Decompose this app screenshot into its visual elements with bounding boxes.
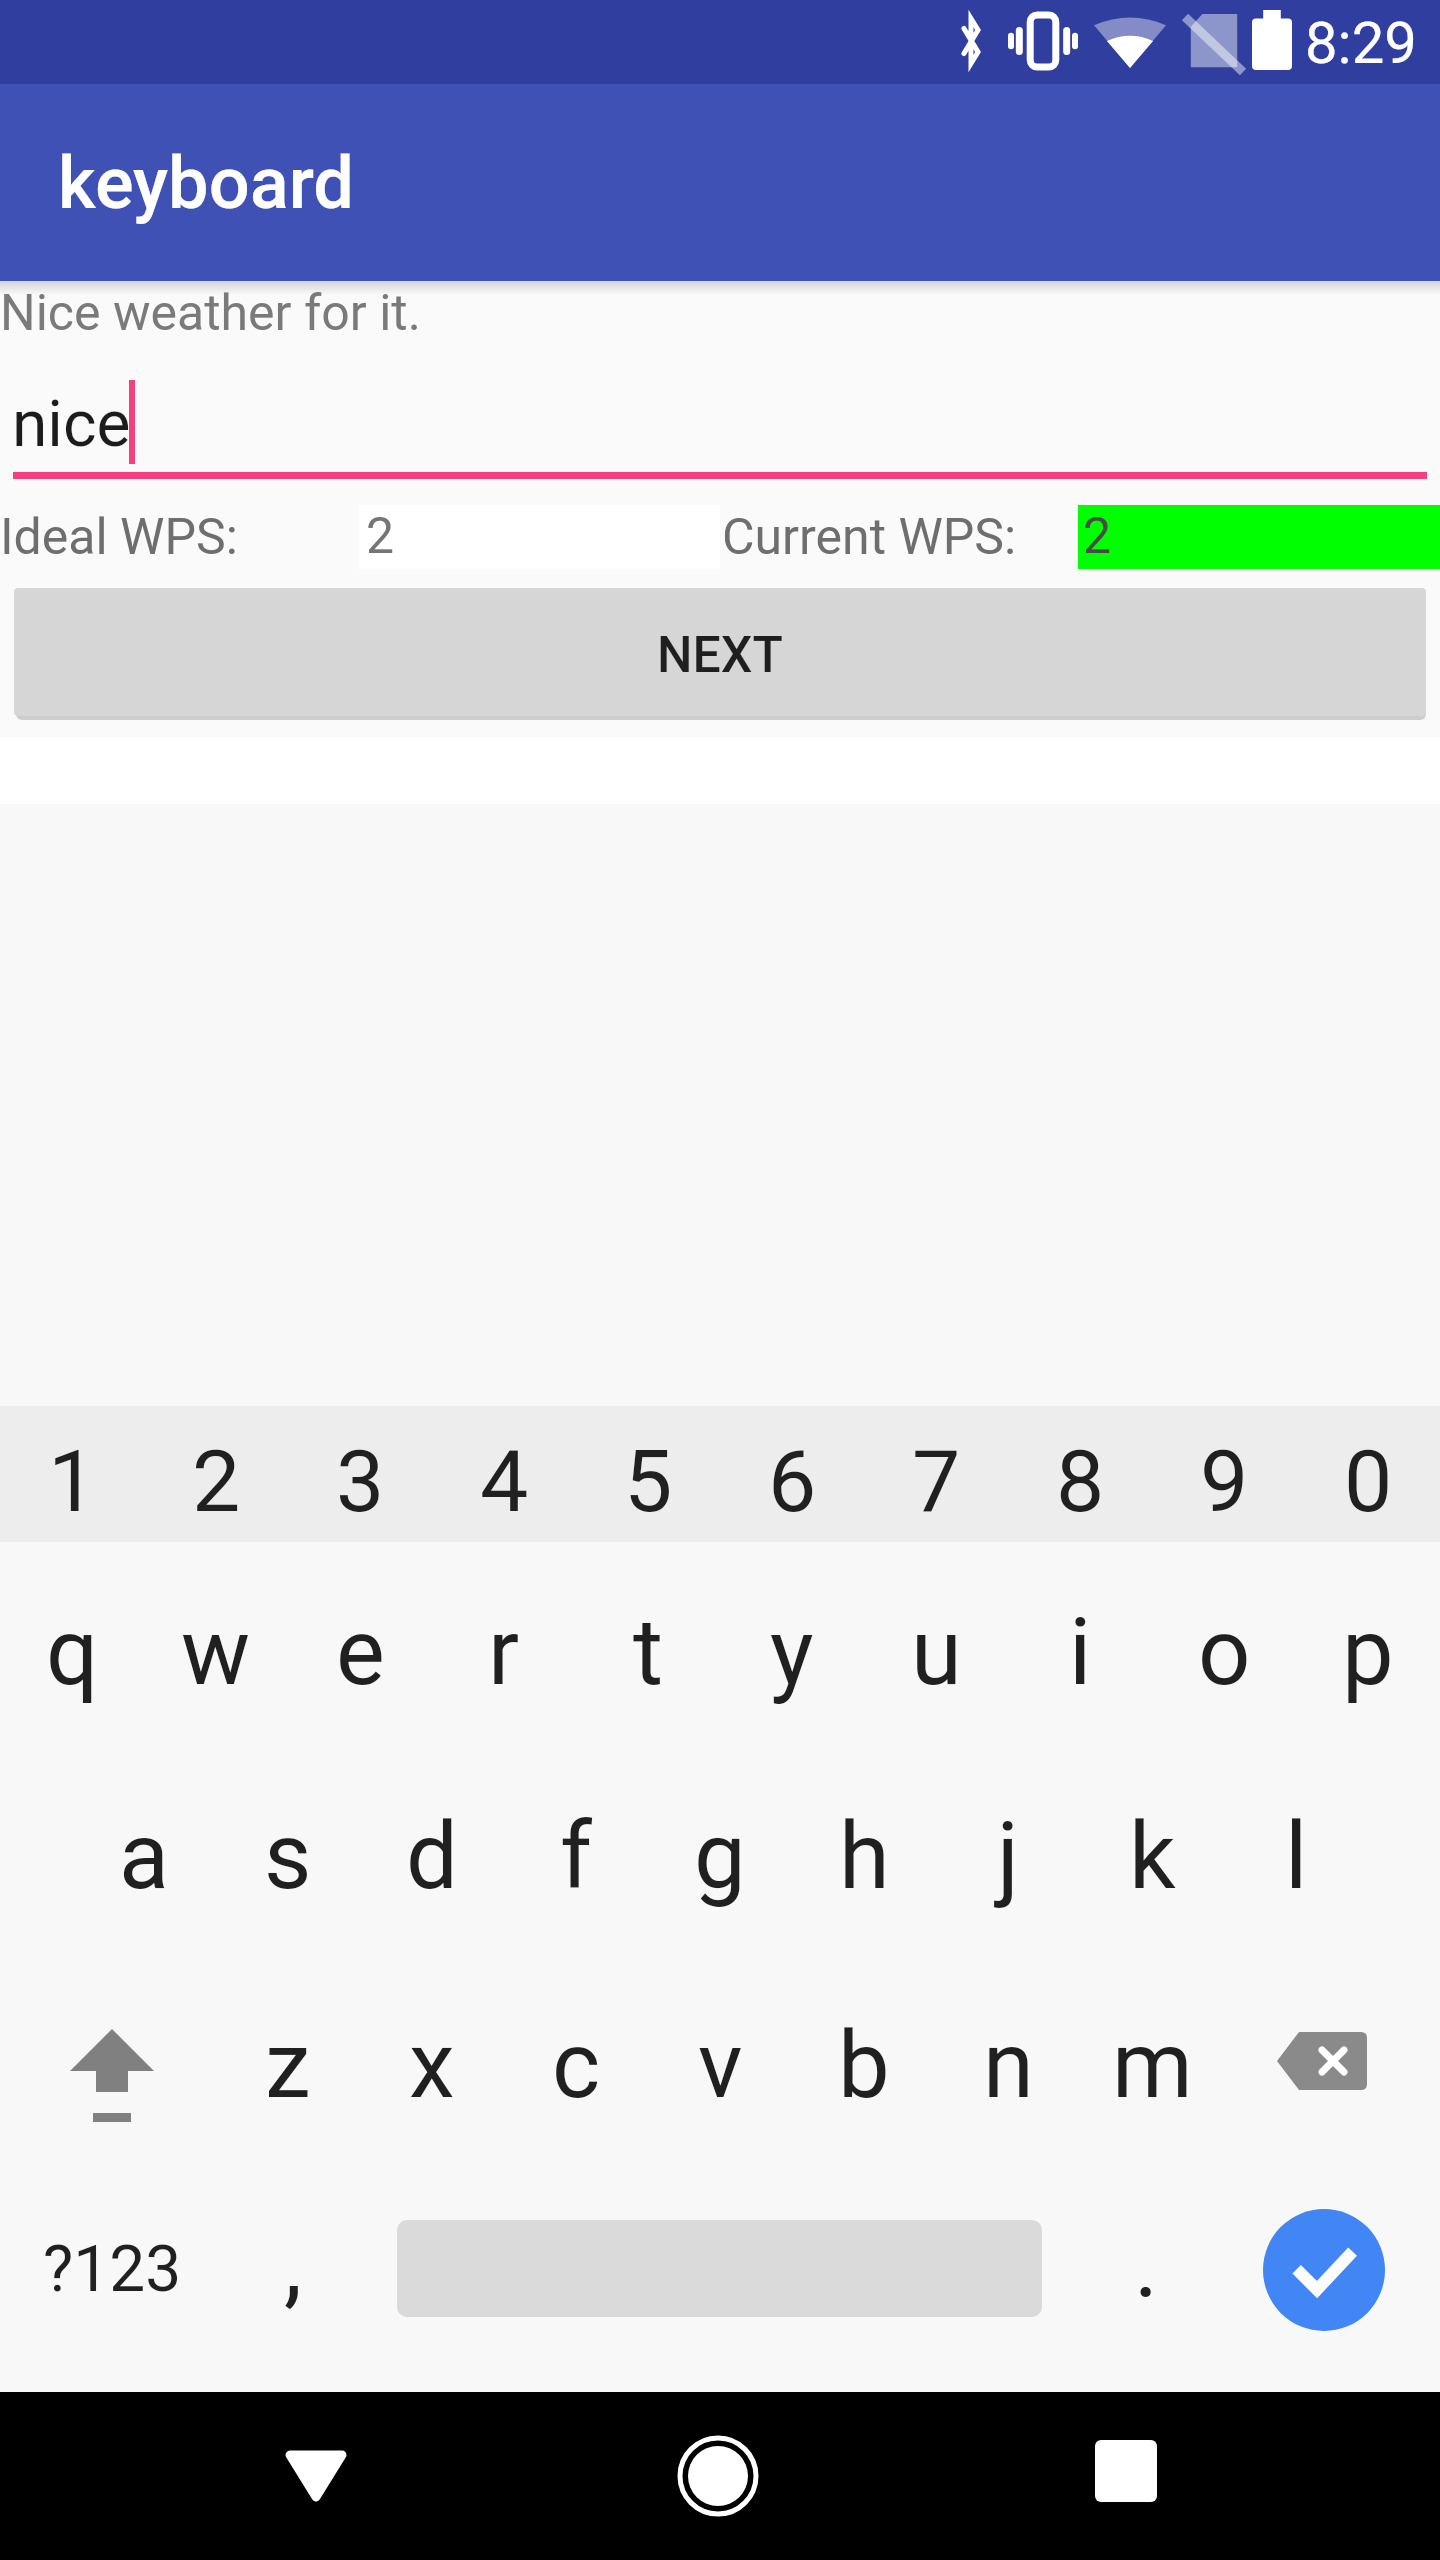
staticText: r bbox=[488, 1599, 520, 1707]
staticText: Ideal WPS: bbox=[0, 508, 238, 567]
staticText: i bbox=[1069, 1599, 1092, 1707]
staticText: 3 bbox=[336, 1431, 385, 1532]
button[interactable]: x bbox=[360, 1994, 504, 2138]
button[interactable]: 4 bbox=[432, 1413, 576, 1549]
button[interactable]: . bbox=[1074, 2193, 1218, 2337]
staticText: Current WPS: bbox=[722, 508, 1017, 567]
button[interactable]: i bbox=[1008, 1581, 1152, 1725]
button[interactable]: 7 bbox=[864, 1413, 1008, 1549]
button[interactable]: 9 bbox=[1152, 1413, 1296, 1549]
button[interactable]: , bbox=[221, 2193, 365, 2337]
staticText: a bbox=[119, 1803, 170, 1911]
button[interactable]: n bbox=[936, 1994, 1080, 2138]
staticText: 1 bbox=[48, 1431, 97, 1532]
staticText: 2 bbox=[1083, 507, 1112, 566]
staticText: o bbox=[1198, 1599, 1251, 1707]
button[interactable]: 5 bbox=[576, 1413, 720, 1549]
button[interactable]: 2 bbox=[1078, 505, 1440, 569]
staticText: v bbox=[698, 2012, 743, 2120]
staticText: g bbox=[694, 1803, 746, 1911]
button[interactable] bbox=[256, 2416, 376, 2536]
staticText: t bbox=[633, 1599, 664, 1707]
staticText: nice bbox=[12, 387, 131, 462]
button[interactable]: 2 bbox=[144, 1413, 288, 1549]
button[interactable] bbox=[40, 2000, 184, 2144]
staticText: 7 bbox=[912, 1431, 961, 1532]
staticText: c bbox=[552, 2012, 601, 2120]
staticText: Nice weather for it. bbox=[0, 284, 421, 343]
staticText: n bbox=[983, 2012, 1034, 2120]
staticText: j bbox=[997, 1803, 1020, 1911]
staticText: p bbox=[1342, 1599, 1394, 1707]
button[interactable]: ?123 bbox=[30, 2197, 194, 2341]
staticText: 4 bbox=[480, 1431, 529, 1532]
staticText: x bbox=[409, 2012, 455, 2120]
button[interactable]: t bbox=[576, 1581, 720, 1725]
button[interactable]: f bbox=[504, 1785, 648, 1929]
button[interactable]: u bbox=[864, 1581, 1008, 1725]
staticText: 9 bbox=[1200, 1431, 1249, 1532]
button[interactable]: c bbox=[504, 1994, 648, 2138]
button[interactable]: z bbox=[216, 1994, 360, 2138]
staticText: , bbox=[284, 2211, 303, 2319]
button[interactable]: 2 bbox=[359, 505, 720, 569]
staticText: s bbox=[264, 1803, 312, 1911]
button[interactable]: b bbox=[792, 1994, 936, 2138]
button[interactable]: 1 bbox=[0, 1413, 144, 1549]
staticText: NEXT bbox=[657, 626, 783, 685]
button[interactable]: v bbox=[648, 1994, 792, 2138]
staticText: 2 bbox=[192, 1431, 241, 1532]
button[interactable]: m bbox=[1080, 1994, 1224, 2138]
button[interactable]: 3 bbox=[288, 1413, 432, 1549]
button[interactable]: 6 bbox=[720, 1413, 864, 1549]
button[interactable]: g bbox=[648, 1785, 792, 1929]
button[interactable]: w bbox=[144, 1581, 288, 1725]
button[interactable]: NEXT bbox=[14, 588, 1426, 716]
button[interactable]: a bbox=[72, 1785, 216, 1929]
staticText: 6 bbox=[768, 1431, 817, 1532]
button[interactable]: h bbox=[792, 1785, 936, 1929]
staticText: k bbox=[1129, 1803, 1176, 1911]
button[interactable]: y bbox=[720, 1581, 864, 1725]
button[interactable]: j bbox=[936, 1785, 1080, 1929]
staticText: m bbox=[1112, 2012, 1193, 2120]
staticText: 5 bbox=[624, 1431, 673, 1532]
button[interactable] bbox=[1250, 1989, 1394, 2133]
staticText: ?123 bbox=[43, 2232, 182, 2307]
staticText: 2 bbox=[366, 507, 395, 566]
button[interactable]: e bbox=[288, 1581, 432, 1725]
staticText: u bbox=[911, 1599, 962, 1707]
staticText: 8:29 bbox=[1305, 9, 1417, 77]
staticText: h bbox=[839, 1803, 890, 1911]
button[interactable] bbox=[658, 2416, 778, 2536]
staticText: f bbox=[560, 1803, 592, 1911]
button[interactable]: k bbox=[1080, 1785, 1224, 1929]
button[interactable]: s bbox=[216, 1785, 360, 1929]
staticText: q bbox=[46, 1599, 99, 1707]
button[interactable]: nice bbox=[13, 369, 1427, 479]
staticText: 0 bbox=[1344, 1431, 1393, 1532]
staticText: b bbox=[838, 2012, 890, 2120]
button[interactable]: q bbox=[0, 1581, 144, 1725]
button[interactable]: p bbox=[1296, 1581, 1440, 1725]
button[interactable]: 8 bbox=[1008, 1413, 1152, 1549]
button[interactable] bbox=[1065, 2416, 1185, 2536]
button[interactable]: l bbox=[1224, 1785, 1368, 1929]
staticText: y bbox=[770, 1599, 814, 1707]
staticText: e bbox=[336, 1599, 385, 1707]
button[interactable]: 0 bbox=[1296, 1413, 1440, 1549]
staticText: 8 bbox=[1056, 1431, 1105, 1532]
staticText: keyboard bbox=[58, 141, 354, 225]
button[interactable]: o bbox=[1152, 1581, 1296, 1725]
staticText: w bbox=[181, 1599, 251, 1707]
staticText: . bbox=[1134, 2211, 1159, 2319]
staticText: z bbox=[265, 2012, 311, 2120]
button[interactable] bbox=[1263, 2209, 1385, 2331]
staticText: d bbox=[406, 1803, 458, 1911]
button[interactable]: r bbox=[432, 1581, 576, 1725]
button[interactable]: d bbox=[360, 1785, 504, 1929]
staticText: l bbox=[1285, 1803, 1308, 1911]
